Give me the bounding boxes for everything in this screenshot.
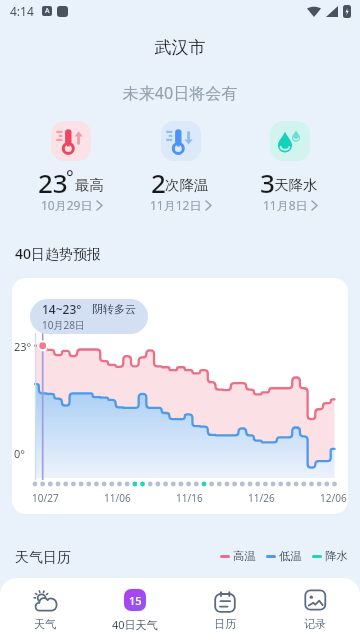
staticText: 11/06 bbox=[104, 491, 131, 505]
staticText: ° bbox=[66, 165, 74, 190]
staticText: 记录 bbox=[304, 617, 326, 631]
staticText: 武汉市 bbox=[0, 37, 360, 58]
staticText: 11月12日 bbox=[150, 197, 202, 213]
staticText: 11/26 bbox=[248, 491, 275, 505]
staticText: 天气 bbox=[34, 617, 56, 631]
button[interactable]: 日历 bbox=[180, 578, 270, 640]
staticText: 23 bbox=[38, 165, 68, 200]
staticText: 2 bbox=[151, 165, 166, 200]
button[interactable]: 23 bbox=[16, 121, 126, 213]
staticText: 14~23° bbox=[42, 301, 82, 317]
staticText: 阴转多云 bbox=[92, 302, 136, 316]
staticText: 高温 bbox=[233, 549, 256, 563]
staticText: 10/27 bbox=[32, 491, 59, 505]
button[interactable]: 40日天气 bbox=[90, 578, 180, 640]
staticText: 天降水 bbox=[274, 176, 318, 194]
staticText: 12/06 bbox=[320, 491, 347, 505]
button[interactable]: 2 bbox=[126, 121, 235, 213]
staticText: A bbox=[45, 6, 50, 16]
staticText: 降水 bbox=[325, 549, 348, 563]
staticText: 低温 bbox=[279, 549, 302, 563]
staticText: 日历 bbox=[214, 617, 236, 631]
staticText: 10月28日 bbox=[42, 318, 85, 332]
staticText: 次降温 bbox=[165, 176, 209, 194]
staticText: 0° bbox=[14, 446, 25, 461]
button[interactable]: 记录 bbox=[270, 578, 360, 640]
staticText: 11/16 bbox=[176, 491, 203, 505]
staticText: 11月8日 bbox=[263, 197, 308, 213]
staticText: 4:14 bbox=[10, 3, 34, 19]
staticText: 40日天气 bbox=[112, 617, 158, 632]
staticText: 未来40日将会有 bbox=[0, 82, 360, 104]
button[interactable]: 3 bbox=[235, 121, 344, 213]
staticText: 天气日历 bbox=[15, 549, 71, 567]
staticText: 23° bbox=[14, 339, 32, 354]
button[interactable]: 天气 bbox=[0, 578, 90, 640]
staticText: 3 bbox=[260, 165, 275, 200]
staticText: 40日趋势预报 bbox=[15, 244, 102, 263]
staticText: 最高 bbox=[75, 176, 104, 194]
staticText: 10月29日 bbox=[41, 197, 93, 213]
staticText: 15 bbox=[129, 593, 142, 608]
